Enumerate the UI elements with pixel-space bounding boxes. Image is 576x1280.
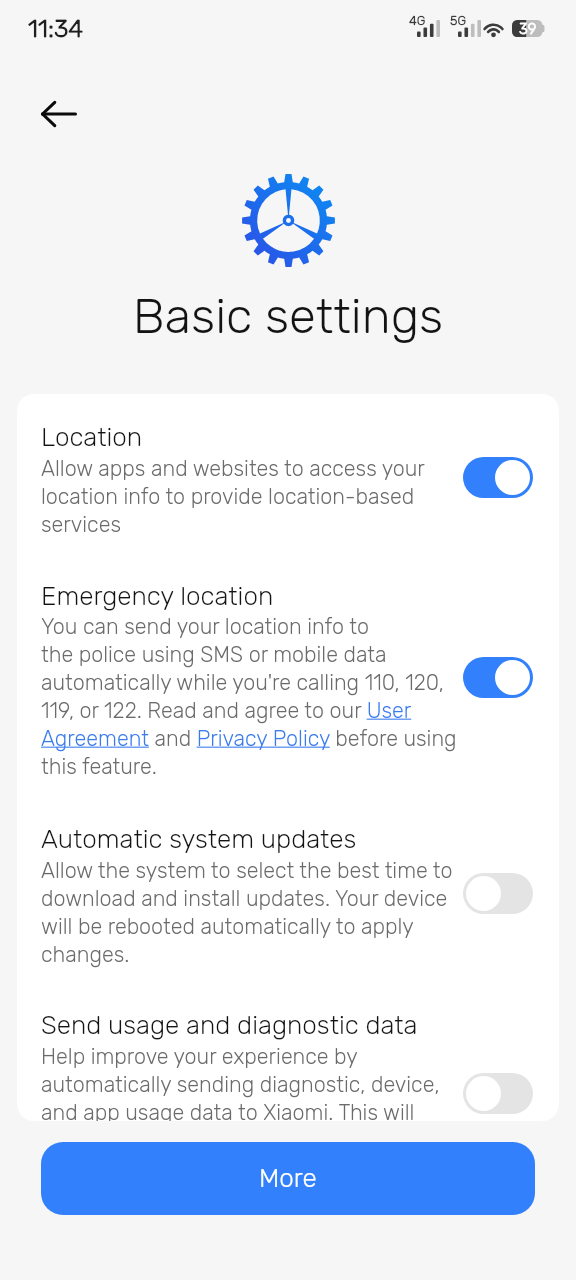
button[interactable]: Back — [29, 90, 89, 138]
button[interactable]: Toggle on — [463, 657, 533, 698]
staticText: 5G — [450, 13, 467, 28]
staticText: Automatic system updates — [41, 824, 357, 855]
staticText: 4G — [409, 13, 426, 28]
button[interactable]: More — [41, 1142, 535, 1215]
staticText: Emergency location — [41, 581, 274, 612]
staticText: More — [259, 1163, 317, 1194]
staticText: 11:34 — [28, 14, 84, 44]
staticText: Location — [41, 422, 143, 453]
button[interactable]: Location — [17, 398, 559, 589]
staticText: Basic settings — [0, 287, 576, 345]
staticText: You can send your location info to the p… — [41, 614, 481, 779]
button[interactable]: Emergency location — [17, 557, 559, 800]
button[interactable]: Toggle off — [463, 873, 533, 914]
staticText: Help improve your experience by automati… — [41, 1044, 461, 1121]
button[interactable]: Automatic system updates — [17, 800, 559, 991]
button[interactable]: Send usage and diagnostic data — [17, 986, 559, 1121]
staticText: Allow apps and websites to access your l… — [41, 456, 439, 537]
button[interactable]: Toggle off — [463, 1073, 533, 1114]
staticText: Send usage and diagnostic data — [41, 1010, 418, 1041]
staticText: Allow the system to select the best time… — [41, 858, 461, 967]
button[interactable]: Toggle on — [463, 457, 533, 498]
staticText: 39 — [519, 20, 537, 38]
